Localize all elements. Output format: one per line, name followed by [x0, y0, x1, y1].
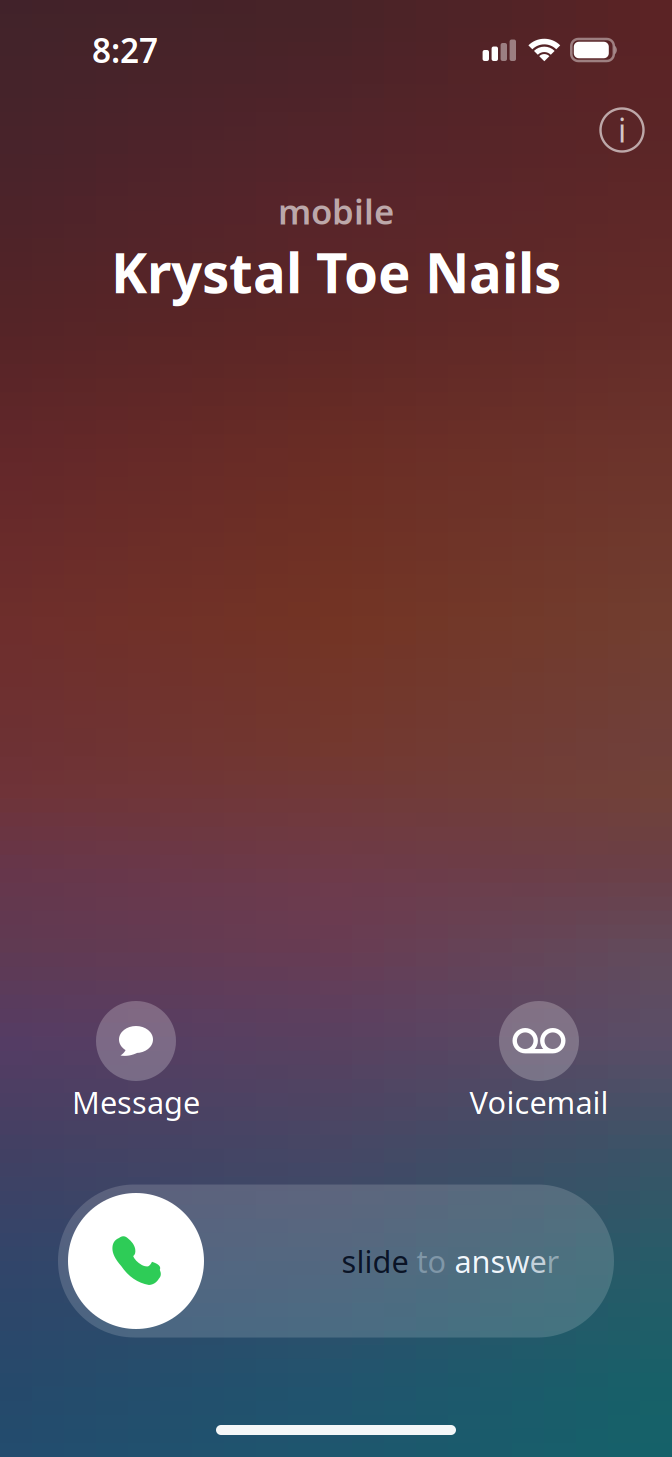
staticText: Voicemail [469, 1082, 608, 1122]
staticText: s [490, 1241, 505, 1281]
staticText: e [529, 1241, 546, 1281]
button[interactable]: Slide to answer [58, 1184, 614, 1337]
staticText: Message [72, 1082, 200, 1122]
staticText: mobile [278, 188, 394, 234]
button[interactable]: Voicemail [444, 1001, 634, 1123]
staticText: to [416, 1241, 446, 1281]
button[interactable]: Message [41, 1001, 231, 1123]
staticText: slide [341, 1241, 416, 1281]
staticText: i [618, 109, 626, 151]
staticText: Krystal Toe Nails [111, 236, 561, 308]
staticText: n [471, 1241, 490, 1281]
staticText: r [546, 1241, 559, 1281]
staticText: 8:27 [92, 28, 158, 72]
staticText: w [505, 1241, 529, 1281]
staticText: a [454, 1241, 471, 1281]
button[interactable]: Call details [587, 95, 657, 165]
